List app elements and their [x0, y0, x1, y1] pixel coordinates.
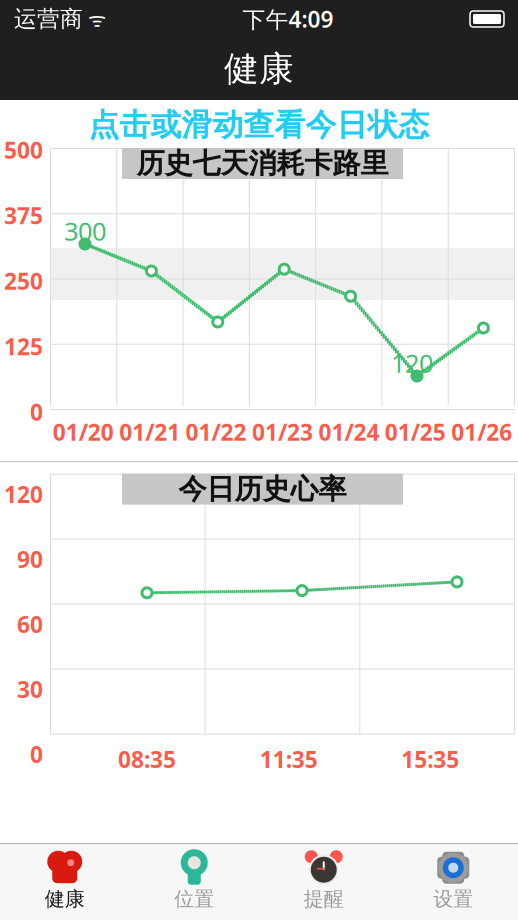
button[interactable]: 健康 — [0, 847, 129, 917]
staticText: 01/25 — [385, 417, 446, 447]
staticText: 下午4:09 — [242, 4, 333, 34]
staticText: 120 — [391, 346, 433, 380]
staticText: 90 — [17, 544, 43, 574]
staticText: 历史七天消耗卡路里 — [136, 146, 388, 181]
staticText: 60 — [17, 609, 43, 639]
staticText: 120 — [4, 479, 43, 509]
staticText: 11:35 — [260, 744, 318, 774]
staticText: 15:35 — [401, 744, 459, 774]
staticText: 300 — [64, 214, 106, 248]
staticText: 250 — [4, 266, 43, 296]
staticText: 运营商 — [14, 5, 83, 33]
staticText: 01/22 — [186, 417, 247, 447]
staticText: ᯤ — [83, 6, 106, 32]
staticText: 健康 — [45, 887, 85, 911]
staticText: 提醒 — [304, 887, 344, 911]
staticText: 点击或滑动查看今日状态 — [88, 106, 429, 144]
staticText: 08:35 — [118, 744, 176, 774]
staticText: 30 — [17, 674, 43, 704]
staticText: 500 — [4, 135, 43, 165]
staticText: 01/21 — [119, 417, 180, 447]
staticText: 0 — [30, 739, 43, 769]
button[interactable]: 提醒 — [259, 847, 388, 917]
button[interactable]: 位置 — [129, 847, 259, 917]
staticText: 01/26 — [451, 417, 512, 447]
staticText: 01/20 — [53, 417, 114, 447]
staticText: 设置 — [433, 887, 473, 911]
staticText: 位置 — [174, 887, 214, 911]
staticText: 01/24 — [318, 417, 379, 447]
staticText: 01/23 — [252, 417, 313, 447]
staticText: 0 — [30, 397, 43, 427]
staticText: 今日历史心率 — [178, 472, 346, 506]
staticText: 健康 — [224, 48, 294, 90]
button[interactable]: 设置 — [388, 847, 518, 917]
staticText: 375 — [4, 200, 43, 230]
staticText: 125 — [4, 331, 43, 361]
